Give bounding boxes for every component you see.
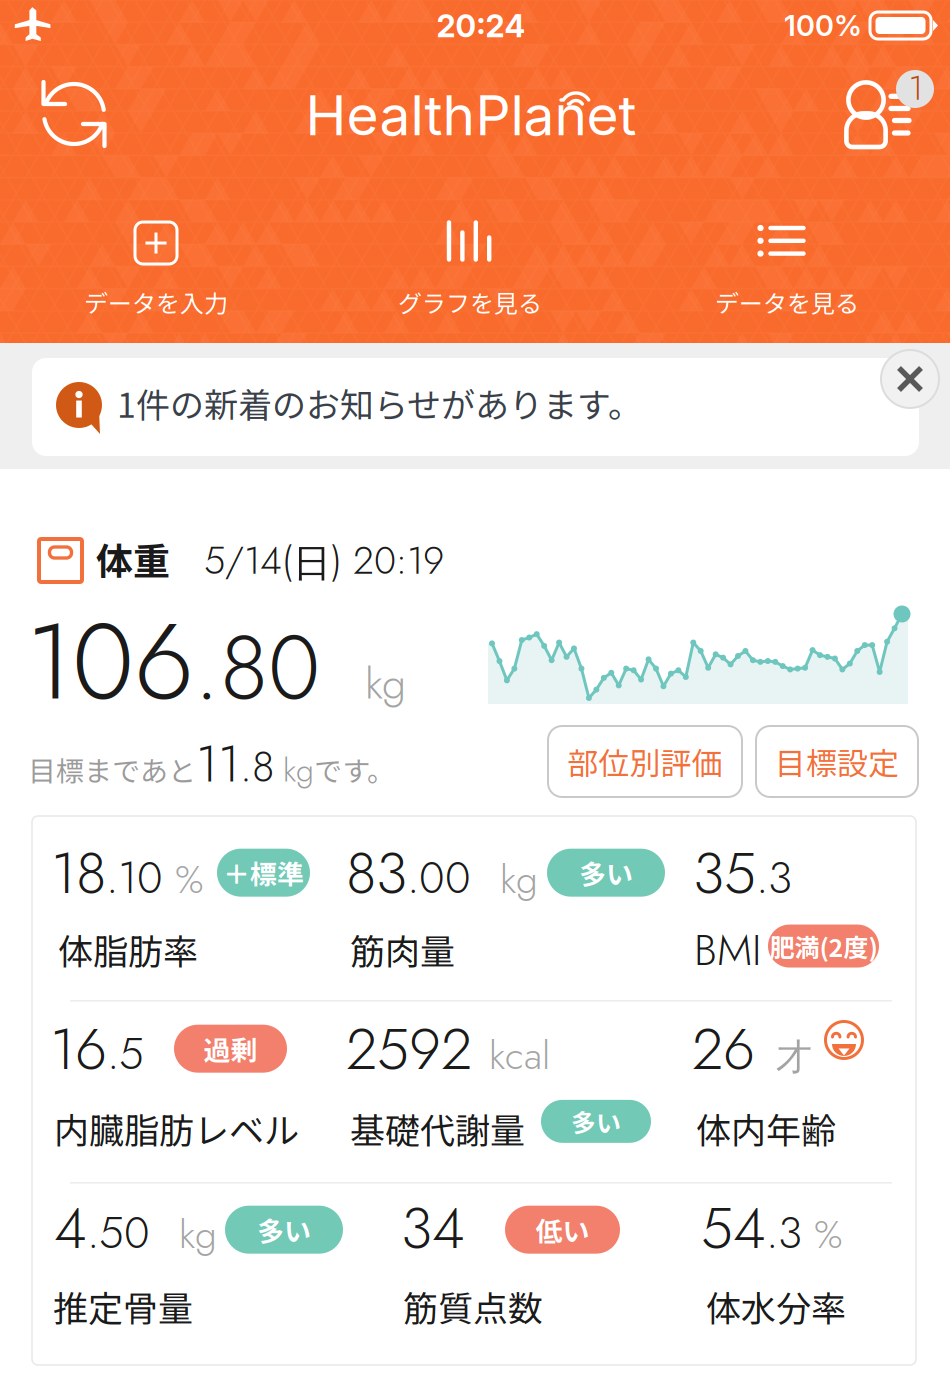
button[interactable]: データを入力 [0,215,316,325]
staticText: 体脂肪率 [58,924,198,975]
staticText: 目標まであと [28,749,196,789]
staticText: データを見る [715,285,859,319]
staticText: 才 [776,1034,812,1080]
staticText: kg [283,747,314,793]
staticText: 過剰 [203,1029,257,1068]
staticText: kg [500,851,538,908]
staticText: 低い [535,1210,589,1249]
staticText: 106 [26,584,194,739]
staticText: 多い [571,1103,621,1139]
button[interactable]: 閉じる [881,350,939,408]
staticText: 34 [401,1187,465,1269]
staticText: BMI [694,919,761,981]
staticText: .5 [107,1022,144,1085]
staticText: 4 [54,1187,87,1269]
staticText: 2592 [346,1008,472,1090]
staticText: % [175,851,204,908]
staticText: 5/14(日) 20:19 [204,533,444,588]
staticText: 部位別評価 [567,739,722,784]
staticText: 20:24 [436,7,525,45]
staticText: 推定骨量 [53,1281,193,1332]
staticText: .3 [766,1201,802,1264]
staticText: % [814,1206,843,1263]
staticText: 1件の新着のお知らせがあります。 [117,378,642,428]
button[interactable]: 部位別評価 [548,726,742,797]
staticText: です。 [314,749,395,789]
staticText: .8 [240,737,274,797]
button[interactable]: 目標設定 [756,726,918,797]
staticText: 筋質点数 [403,1281,543,1332]
staticText: HealthPlanet [305,82,636,148]
staticText: .10 [106,846,163,909]
staticText: .50 [87,1201,150,1264]
staticText: kg [179,1206,217,1263]
staticText: kg [365,652,406,715]
staticText: 内臓脂肪レベル [54,1103,299,1154]
staticText: 目標設定 [775,739,899,784]
button[interactable]: アカウント [844,70,936,148]
staticText: .3 [756,846,792,909]
staticText: 54 [701,1187,766,1269]
staticText: グラフを見る [398,285,542,319]
staticText: ＋標準 [223,853,304,892]
button[interactable]: 同期 [31,71,117,157]
staticText: 体重 [96,532,170,586]
staticText: 83 [346,832,407,914]
staticText: 多い [257,1210,311,1249]
button[interactable]: グラフを見る [316,215,632,325]
staticText: 基礎代謝量 [350,1103,525,1154]
button[interactable]: データを見る [632,215,948,325]
staticText: kcal [489,1027,550,1084]
staticText: 肥満(2度) [769,928,877,964]
staticText: 100% [784,8,862,43]
staticText: 16 [50,1008,107,1090]
staticText: 35 [693,832,756,914]
staticText: 多い [579,853,633,892]
staticText: 筋肉量 [350,924,455,975]
button[interactable]: 1件の新着のお知らせがあります。 [32,358,919,456]
staticText: .80 [194,602,320,732]
staticText: データを入力 [84,285,228,319]
staticText: 11 [196,728,240,800]
staticText: 体水分率 [706,1281,846,1332]
staticText: 18 [51,832,106,914]
staticText: 1 [908,63,923,112]
staticText: 26 [692,1008,755,1090]
staticText: .00 [407,846,471,909]
staticText: 体内年齢 [696,1103,836,1154]
